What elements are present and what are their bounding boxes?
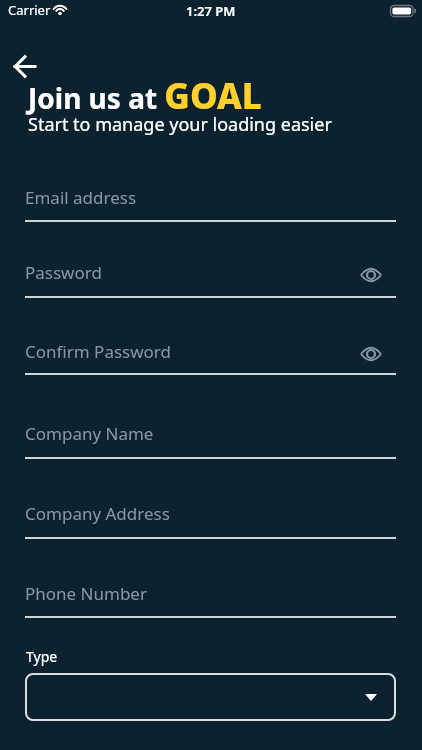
staticText: 1:27 PM <box>186 2 236 20</box>
button[interactable] <box>25 253 396 298</box>
staticText: Company Address <box>25 502 170 525</box>
staticText: Start to manage your loading easier <box>28 112 332 137</box>
staticText: Join us at GOAL <box>28 72 262 120</box>
button[interactable] <box>25 494 396 539</box>
staticText: Phone Number <box>25 582 147 605</box>
staticText: Company Name <box>25 422 154 445</box>
staticText: Carrier <box>8 1 51 19</box>
staticText: Confirm Password <box>25 340 171 363</box>
button[interactable] <box>6 48 46 86</box>
button[interactable] <box>25 178 396 222</box>
staticText: Email address <box>25 186 137 209</box>
button[interactable] <box>25 332 396 375</box>
button[interactable] <box>25 414 396 459</box>
button[interactable] <box>25 673 396 721</box>
staticText: Type <box>26 647 58 666</box>
button[interactable] <box>25 574 396 618</box>
staticText: Password <box>25 261 102 284</box>
